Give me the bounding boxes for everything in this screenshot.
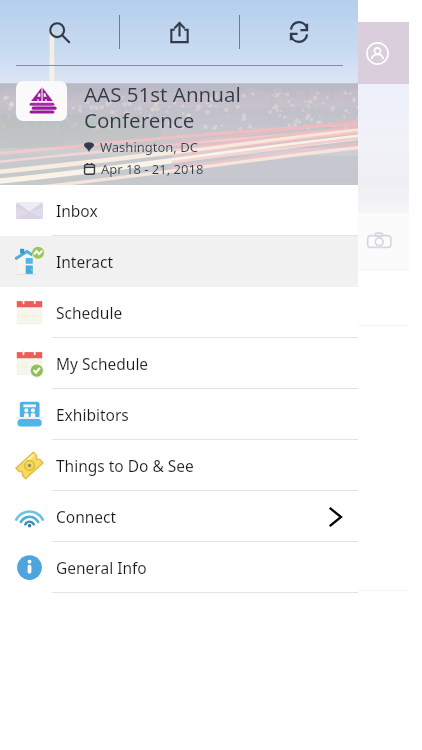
other: Camera: [366, 228, 393, 255]
button[interactable]: Refresh: [240, 0, 358, 64]
button[interactable]: Share: [120, 0, 239, 64]
staticText: Exhibitors: [56, 404, 129, 425]
button[interactable]: Interact: [0, 236, 358, 287]
staticText: Interact: [56, 251, 113, 272]
button[interactable]: Exhibitors: [0, 389, 358, 440]
staticText: Things to Do & See: [56, 455, 194, 476]
button[interactable]: Things to Do & See: [0, 440, 358, 491]
button[interactable]: Search: [0, 0, 119, 64]
button[interactable]: Connect: [0, 491, 358, 542]
button[interactable]: Inbox: [0, 185, 358, 236]
staticText: Connect: [56, 506, 117, 527]
staticText: Washington, DC: [100, 138, 198, 156]
staticText: Schedule: [56, 302, 123, 323]
button[interactable]: General Info: [0, 542, 358, 593]
staticText: My Schedule: [56, 353, 149, 374]
button[interactable]: My Schedule: [0, 338, 358, 389]
staticText: AAS 51st Annual Conference: [84, 80, 241, 134]
button[interactable]: Schedule: [0, 287, 358, 338]
staticText: Apr 18 - 21, 2018: [101, 160, 204, 178]
staticText: General Info: [56, 557, 147, 578]
other: Account: [366, 42, 389, 65]
staticText: Inbox: [56, 200, 98, 221]
